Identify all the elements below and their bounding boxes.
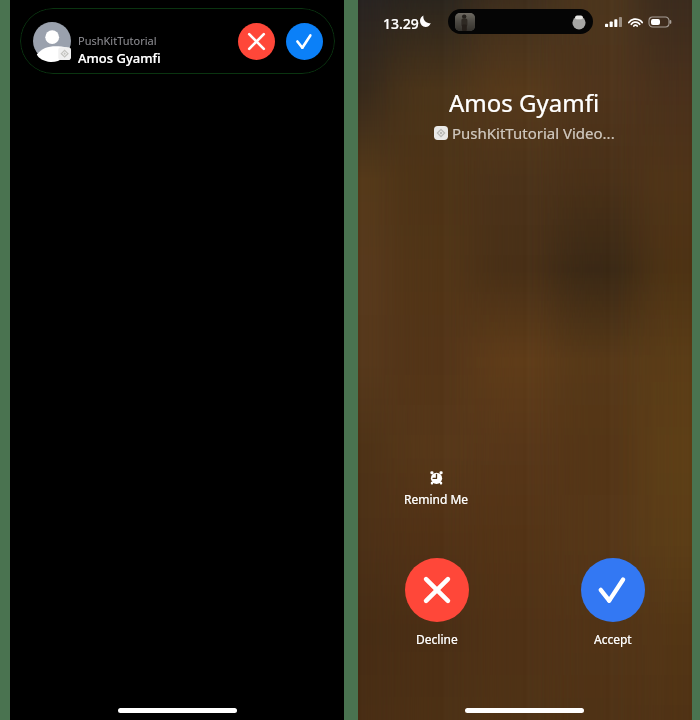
button[interactable]: Accept call <box>581 558 645 622</box>
button[interactable]: Decline call <box>377 558 497 647</box>
staticText: Remind Me <box>404 491 469 507</box>
staticText: Decline <box>416 631 458 647</box>
button[interactable]: Decline call <box>405 558 469 622</box>
staticText: 13.29 <box>383 14 419 33</box>
button[interactable]: Decline <box>238 23 275 60</box>
staticText: Amos Gyamfi <box>449 86 600 119</box>
staticText: PushKitTutorial Video... <box>452 123 615 143</box>
other: Remind Me <box>429 470 444 485</box>
button[interactable]: Accept call <box>553 558 673 647</box>
staticText: Accept <box>594 631 632 647</box>
staticText: Amos Gyamfi <box>78 49 161 67</box>
staticText: PushKitTutorial <box>78 33 157 48</box>
button[interactable]: PushKitTutorial <box>20 8 335 74</box>
button[interactable]: Remind Me <box>395 470 477 507</box>
button[interactable]: Accept <box>286 23 323 60</box>
